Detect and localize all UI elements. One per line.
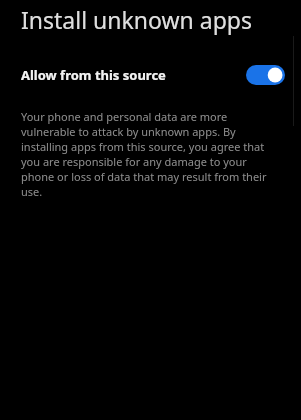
staticText: Your phone and personal data are more vu…	[21, 109, 270, 199]
button[interactable]: Allow from this source	[0, 59, 301, 91]
staticText: Allow from this source	[21, 66, 166, 84]
button[interactable]: Allow from this source toggle, on	[246, 65, 285, 85]
staticText: Install unknown apps	[21, 4, 252, 35]
